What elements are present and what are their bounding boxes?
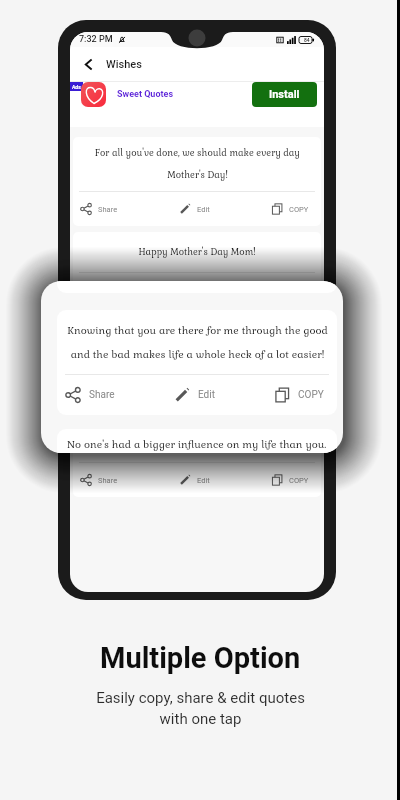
staticText: Share bbox=[98, 205, 118, 214]
staticText: No one's had a bigger influence on my li… bbox=[82, 418, 312, 452]
staticText: Edit bbox=[197, 205, 210, 214]
button[interactable]: Share bbox=[65, 375, 115, 415]
staticText: COPY bbox=[289, 286, 309, 295]
staticText: Easily copy, share & edit quotes with on… bbox=[96, 689, 305, 727]
button[interactable]: COPY bbox=[270, 368, 310, 402]
staticText: COPY bbox=[289, 205, 309, 214]
button[interactable]: Install bbox=[252, 82, 317, 107]
staticText: Multiple Option bbox=[100, 641, 301, 675]
button[interactable]: Share bbox=[79, 368, 119, 402]
staticText: COPY bbox=[298, 389, 324, 401]
staticText: Install bbox=[269, 88, 300, 101]
staticText: Knowing that you are there for me throug… bbox=[82, 323, 313, 357]
staticText: No one's had a bigger influence on my li… bbox=[67, 438, 327, 451]
button[interactable]: Back bbox=[77, 53, 99, 75]
button[interactable]: Share bbox=[79, 192, 119, 226]
button[interactable]: Edit bbox=[178, 273, 211, 307]
staticText: Knowing that you are there for me throug… bbox=[67, 324, 328, 361]
button[interactable]: COPY bbox=[274, 375, 324, 415]
staticText: Sweet Quotes bbox=[117, 89, 174, 100]
staticText: Edit bbox=[197, 286, 210, 295]
staticText: Edit bbox=[198, 389, 215, 401]
staticText: COPY bbox=[289, 476, 309, 485]
staticText: Share bbox=[98, 286, 118, 295]
button[interactable]: COPY bbox=[270, 192, 310, 226]
button[interactable]: COPY bbox=[270, 273, 310, 307]
staticText: Share bbox=[89, 389, 115, 401]
staticText: 7:32 PM bbox=[79, 34, 113, 45]
staticText: Happy Mother's Day Mom! bbox=[138, 246, 256, 258]
button[interactable]: Edit bbox=[174, 375, 215, 415]
staticText: Ads bbox=[72, 84, 81, 90]
button[interactable]: Edit bbox=[178, 463, 211, 497]
staticText: Wishes bbox=[106, 58, 142, 71]
button[interactable]: Share bbox=[79, 273, 119, 307]
button[interactable]: COPY bbox=[270, 463, 310, 497]
button[interactable]: Share bbox=[79, 463, 119, 497]
button[interactable]: Edit bbox=[178, 192, 211, 226]
staticText: COPY bbox=[289, 381, 309, 390]
staticText: For all you've done, we should make ever… bbox=[95, 147, 300, 181]
staticText: Edit bbox=[197, 476, 210, 485]
staticText: Share bbox=[98, 476, 118, 485]
staticText: 84 bbox=[304, 37, 310, 43]
button[interactable]: Edit bbox=[178, 368, 211, 402]
